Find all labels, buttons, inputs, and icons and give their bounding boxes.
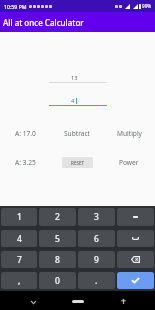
button[interactable]: 8 — [39, 251, 76, 268]
button[interactable]: Home — [72, 300, 84, 303]
button[interactable]: Power — [103, 156, 155, 169]
staticText: RESET — [71, 160, 85, 166]
button[interactable]: 3 — [78, 208, 115, 226]
staticText: 10:59 PM — [4, 3, 27, 10]
button[interactable]: Multiply — [103, 127, 155, 140]
staticText: 0 — [55, 275, 60, 287]
button[interactable]: RESET — [62, 157, 93, 168]
button[interactable]: Space — [117, 230, 154, 247]
button[interactable]: . — [78, 272, 115, 289]
button[interactable]: Backspace — [117, 251, 154, 268]
button[interactable]: 7 — [1, 251, 37, 268]
button[interactable]: Switch keyboard — [117, 295, 129, 307]
staticText: 13 — [71, 74, 78, 81]
staticText: 6 — [94, 233, 99, 245]
button[interactable]: Minus — [117, 208, 154, 226]
staticText: . — [95, 275, 98, 287]
staticText: 7 — [17, 254, 22, 266]
staticText: 99% — [142, 3, 152, 9]
staticText: 2 — [55, 211, 60, 223]
staticText: A: 3.25 — [15, 158, 36, 167]
button[interactable]: 9 — [78, 251, 115, 268]
button[interactable]: Enter — [117, 272, 154, 289]
staticText: 8 — [55, 254, 60, 266]
staticText: Power — [119, 158, 139, 167]
button[interactable]: 6 — [78, 230, 115, 247]
staticText: 4 — [17, 233, 22, 245]
button[interactable]: 4 — [1, 230, 37, 247]
staticText: 9 — [94, 254, 99, 266]
staticText: Subtract — [64, 129, 90, 138]
button[interactable]: , — [1, 272, 37, 289]
staticText: 5 — [55, 233, 60, 245]
staticText: A: 17.0 — [15, 129, 36, 138]
button[interactable]: 5 — [39, 230, 76, 247]
button[interactable]: Hide keyboard — [27, 296, 39, 308]
button[interactable]: Subtract — [51, 127, 103, 140]
button[interactable]: 0 — [39, 272, 76, 289]
staticText: , — [18, 275, 21, 287]
staticText: All at once Calculator — [3, 17, 84, 28]
button[interactable]: 2 — [39, 208, 76, 226]
staticText: 4 — [71, 97, 75, 104]
staticText: 3 — [94, 211, 99, 223]
staticText: Multiply — [117, 129, 142, 138]
staticText: 1 — [17, 211, 22, 223]
button[interactable]: 1 — [1, 208, 37, 226]
